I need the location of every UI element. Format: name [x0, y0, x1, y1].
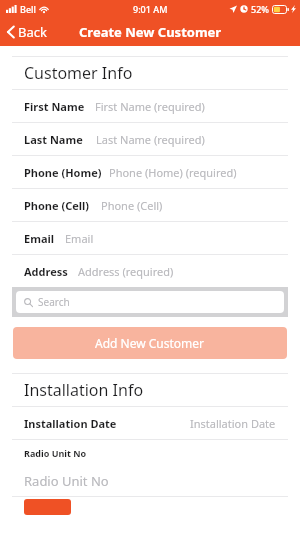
staticText: 9:01 AM: [133, 3, 168, 15]
button[interactable]: Phone (Home): [0, 156, 300, 188]
staticText: Phone (Home) (required): [109, 165, 237, 180]
staticText: First Name (required): [95, 99, 205, 114]
button[interactable]: Email: [0, 222, 300, 254]
button[interactable]: Phone (Cell): [0, 189, 300, 221]
staticText: Bell: [20, 3, 36, 15]
staticText: Phone (Cell): [101, 198, 163, 213]
button[interactable]: Back: [0, 18, 57, 46]
staticText: Installation Info: [24, 379, 144, 401]
button[interactable]: Add radio unit: [24, 499, 71, 515]
button[interactable]: First Name: [0, 90, 300, 122]
staticText: Search: [38, 295, 70, 309]
staticText: Back: [18, 23, 47, 41]
staticText: Phone (Cell): [24, 198, 90, 213]
staticText: Address (required): [78, 264, 174, 279]
staticText: Phone (Home): [24, 165, 102, 180]
staticText: Add New Customer: [95, 335, 205, 351]
staticText: Create New Customer: [79, 23, 222, 41]
staticText: Last Name (required): [96, 132, 205, 147]
staticText: Radio Unit No: [24, 447, 87, 459]
staticText: Radio Unit No: [24, 472, 109, 490]
button[interactable]: Search: [16, 291, 284, 313]
staticText: Installation Date: [24, 416, 117, 431]
staticText: First Name: [24, 99, 85, 114]
button[interactable]: Last Name: [0, 123, 300, 155]
staticText: Installation Date: [190, 416, 276, 431]
staticText: Last Name: [24, 132, 83, 147]
button[interactable]: Installation Date: [0, 407, 300, 439]
button[interactable]: Radio Unit No: [0, 466, 300, 496]
staticText: 52%: [251, 3, 269, 15]
button[interactable]: Add New Customer: [13, 327, 287, 359]
staticText: Customer Info: [24, 62, 133, 84]
button[interactable]: Address: [0, 255, 300, 287]
staticText: Address: [24, 264, 68, 279]
staticText: Email: [65, 231, 94, 246]
staticText: Email: [24, 231, 55, 246]
